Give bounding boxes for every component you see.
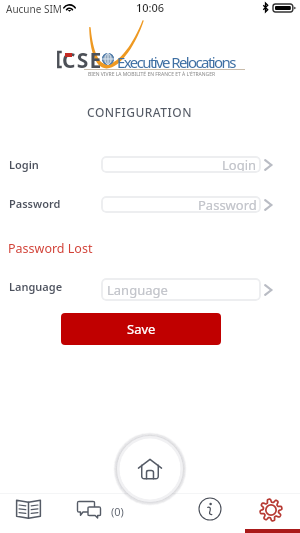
staticText: Password (9, 196, 61, 211)
button[interactable]: Documents (3, 494, 54, 524)
staticText: Login (9, 157, 39, 172)
button[interactable]: Open Language (263, 283, 275, 297)
staticText: Executive Relocations (117, 52, 235, 72)
staticText: Password (198, 196, 257, 213)
button[interactable]: Open Password (263, 198, 275, 212)
staticText: (0) (111, 504, 124, 519)
staticText: Language (107, 281, 168, 299)
staticText: CSE (62, 46, 103, 75)
staticText: BIEN VIVRE LA MOBILITÉ EN FRANCE ET À L'… (88, 71, 216, 78)
staticText: 10:06 (0, 0, 300, 15)
button[interactable]: Open Login (263, 158, 275, 172)
staticText: CONFIGURATION (87, 104, 193, 120)
button[interactable]: Password (101, 196, 261, 213)
button[interactable]: Save (61, 313, 221, 345)
button[interactable]: Info (195, 494, 225, 524)
button[interactable]: Password Lost (8, 240, 93, 257)
button[interactable]: Login (101, 156, 261, 173)
staticText: Aucune SIM (6, 2, 62, 16)
button[interactable]: Language (101, 278, 261, 301)
staticText: Save (127, 320, 156, 338)
button[interactable]: Home (118, 437, 182, 501)
staticText: Language (9, 279, 63, 294)
staticText: Login (222, 156, 257, 173)
button[interactable]: Messages (70, 496, 130, 526)
button[interactable]: Settings (245, 494, 300, 533)
